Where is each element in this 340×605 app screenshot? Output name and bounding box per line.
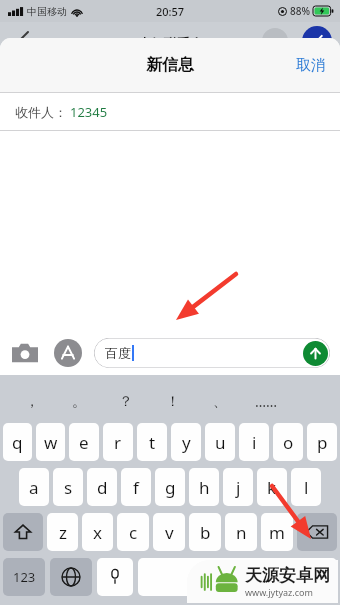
button[interactable]: s (53, 468, 83, 506)
button[interactable]: Compose (302, 26, 332, 56)
staticText: x (93, 521, 102, 544)
button[interactable]: j (223, 468, 253, 506)
button[interactable]: Delete (297, 513, 337, 551)
button[interactable]: m (261, 513, 293, 551)
button[interactable]: r (103, 423, 133, 461)
button[interactable]: 收件人： (0, 93, 340, 130)
button[interactable]: n (225, 513, 257, 551)
staticText: r (114, 431, 122, 454)
button[interactable]: p (307, 423, 337, 461)
button[interactable] (138, 558, 337, 596)
button[interactable]: f (121, 468, 151, 506)
button[interactable]: g (155, 468, 185, 506)
staticText: j (236, 476, 241, 499)
button[interactable]: Change keyboard (50, 558, 92, 596)
button[interactable]: App Store (54, 339, 82, 367)
staticText: 收件人： (15, 104, 67, 120)
button[interactable]: o (273, 423, 303, 461)
staticText: a (29, 476, 39, 499)
button[interactable]: e (69, 423, 99, 461)
staticText: i (252, 431, 257, 454)
staticText: c (129, 521, 138, 544)
staticText: u (215, 431, 226, 454)
button[interactable]: a (19, 468, 49, 506)
button[interactable]: ？ (102, 384, 149, 419)
staticText: www.jytyaz.com (245, 586, 313, 598)
staticText: 天源安卓网 (245, 565, 330, 586)
staticText: e (79, 431, 89, 454)
staticText: 123 (13, 568, 36, 586)
button[interactable]: 百度 (94, 338, 330, 368)
button[interactable]: v (153, 513, 185, 551)
staticText: 中国移动 (27, 5, 67, 18)
button[interactable]: 。 (55, 384, 102, 419)
staticText: ？ (119, 393, 133, 411)
staticText: o (283, 431, 294, 454)
button[interactable]: ， (8, 384, 55, 419)
button[interactable]: y (171, 423, 201, 461)
staticText: d (97, 476, 108, 499)
button[interactable]: b (189, 513, 221, 551)
button[interactable]: 123 (3, 558, 45, 596)
staticText: f (133, 476, 139, 499)
staticText: t (149, 431, 156, 454)
staticText: s (64, 476, 73, 499)
staticText: h (199, 476, 210, 499)
staticText: m (269, 521, 285, 544)
button[interactable]: d (87, 468, 117, 506)
staticText: b (200, 521, 211, 544)
button[interactable]: x (82, 513, 113, 551)
button[interactable]: t (137, 423, 167, 461)
staticText: w (44, 431, 58, 454)
button[interactable]: 取消 (288, 50, 334, 81)
button[interactable]: Send (303, 341, 328, 366)
staticText: z (59, 521, 67, 544)
button[interactable]: l (291, 468, 321, 506)
staticText: 百度 (105, 345, 131, 361)
staticText: v (165, 521, 174, 544)
button[interactable]: ！ (149, 384, 196, 419)
staticText: 。 (72, 393, 86, 411)
button[interactable]: u (205, 423, 235, 461)
staticText: n (236, 521, 247, 544)
staticText: …… (255, 392, 278, 411)
button[interactable]: …… (243, 384, 290, 419)
staticText: y (182, 431, 191, 454)
staticText: k (267, 476, 277, 499)
staticText: 20:57 (156, 4, 185, 19)
staticText: 未知联系人 (138, 35, 203, 51)
staticText: p (317, 431, 328, 454)
button[interactable]: c (117, 513, 149, 551)
button[interactable]: h (189, 468, 219, 506)
button[interactable]: 、 (196, 384, 243, 419)
button[interactable]: q (3, 423, 32, 461)
button[interactable]: i (239, 423, 269, 461)
button[interactable]: z (47, 513, 78, 551)
button[interactable]: Shift (3, 513, 43, 551)
staticText: l (304, 476, 309, 499)
staticText: 、 (213, 393, 227, 411)
button[interactable]: Camera (10, 338, 40, 368)
staticText: 12345 (70, 103, 108, 121)
staticText: g (165, 476, 176, 499)
staticText: q (12, 431, 23, 454)
button[interactable]: k (257, 468, 287, 506)
staticText: 88% (290, 4, 310, 18)
button[interactable]: w (36, 423, 65, 461)
button[interactable]: Dictation (97, 558, 133, 596)
staticText: ！ (166, 393, 180, 411)
staticText: ， (25, 393, 39, 411)
staticText: 取消 (296, 56, 326, 75)
staticText: 新信息 (146, 55, 194, 75)
